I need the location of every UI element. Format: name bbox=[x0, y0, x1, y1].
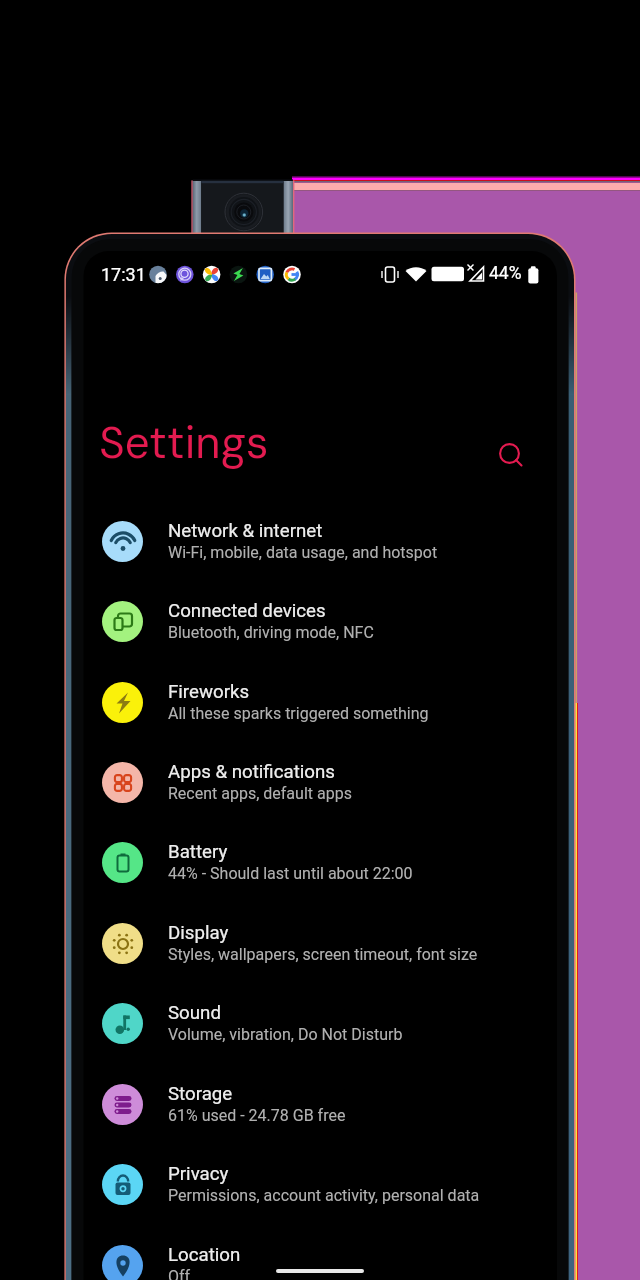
button[interactable]: Sound bbox=[83, 983, 557, 1063]
staticText: Settings bbox=[99, 414, 269, 471]
staticText: Battery bbox=[168, 841, 228, 863]
button[interactable]: Storage bbox=[83, 1064, 557, 1144]
staticText: All these sparks triggered something bbox=[168, 704, 429, 723]
staticText: Volume, vibration, Do Not Disturb bbox=[168, 1025, 403, 1044]
staticText: Fireworks bbox=[168, 681, 250, 703]
button[interactable]: Location bbox=[83, 1225, 557, 1280]
staticText: Sound bbox=[168, 1002, 221, 1024]
staticText: Display bbox=[168, 922, 229, 944]
button[interactable]: Fireworks bbox=[83, 662, 557, 742]
staticText: Styles, wallpapers, screen timeout, font… bbox=[168, 945, 478, 964]
button[interactable]: Apps & notifications bbox=[83, 742, 557, 822]
button[interactable]: Search bbox=[493, 437, 530, 474]
staticText: Off bbox=[168, 1267, 191, 1280]
button[interactable]: Privacy bbox=[83, 1144, 557, 1224]
staticText: Connected devices bbox=[168, 600, 326, 622]
staticText: 44% - Should last until about 22:00 bbox=[168, 864, 413, 883]
staticText: Storage bbox=[168, 1083, 233, 1105]
staticText: Bluetooth, driving mode, NFC bbox=[168, 623, 374, 642]
button[interactable]: Display bbox=[83, 903, 557, 983]
button[interactable]: Battery bbox=[83, 822, 557, 902]
staticText: 61% used - 24.78 GB free bbox=[168, 1106, 346, 1125]
staticText: Network & internet bbox=[168, 520, 323, 542]
staticText: Recent apps, default apps bbox=[168, 784, 352, 803]
button[interactable]: Network & internet bbox=[83, 501, 557, 581]
staticText: 17:31 bbox=[101, 264, 146, 285]
staticText: Permissions, account activity, personal … bbox=[168, 1186, 480, 1205]
staticText: Wi-Fi, mobile, data usage, and hotspot bbox=[168, 543, 438, 562]
staticText: 44% bbox=[489, 263, 522, 284]
staticText: Location bbox=[168, 1244, 241, 1266]
staticText: Apps & notifications bbox=[168, 761, 335, 783]
button[interactable]: Connected devices bbox=[83, 581, 557, 661]
staticText: Privacy bbox=[168, 1163, 229, 1185]
